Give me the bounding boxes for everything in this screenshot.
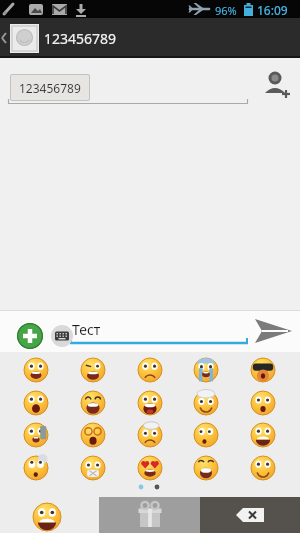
button[interactable] [136, 389, 164, 417]
button[interactable] [192, 421, 220, 449]
staticText: 96% [215, 3, 237, 18]
button[interactable] [22, 356, 50, 384]
button[interactable] [22, 454, 50, 482]
button[interactable] [249, 454, 277, 482]
button[interactable] [136, 421, 164, 449]
button[interactable]: Тест [70, 315, 248, 345]
staticText: Тест [72, 320, 101, 339]
button[interactable] [249, 356, 277, 384]
staticText: 123456789 [19, 80, 81, 96]
button[interactable] [249, 421, 277, 449]
button[interactable] [22, 421, 50, 449]
button[interactable] [192, 356, 220, 384]
button[interactable] [99, 497, 200, 533]
button[interactable] [0, 497, 99, 533]
button[interactable] [192, 389, 220, 417]
button[interactable] [22, 389, 50, 417]
button[interactable] [51, 325, 73, 347]
button[interactable] [79, 454, 107, 482]
staticText: 123456789 [44, 29, 117, 48]
staticText: 16:09 [257, 2, 288, 18]
button[interactable] [249, 389, 277, 417]
button[interactable] [136, 454, 164, 482]
button[interactable]: 123456789 [10, 18, 117, 58]
button[interactable] [200, 497, 300, 533]
button[interactable] [252, 314, 296, 350]
button[interactable]: 123456789 [10, 74, 90, 101]
button[interactable] [79, 389, 107, 417]
button[interactable] [192, 454, 220, 482]
button[interactable] [17, 323, 43, 349]
button[interactable] [136, 356, 164, 384]
button[interactable] [258, 66, 294, 102]
button[interactable] [79, 356, 107, 384]
button[interactable] [79, 421, 107, 449]
